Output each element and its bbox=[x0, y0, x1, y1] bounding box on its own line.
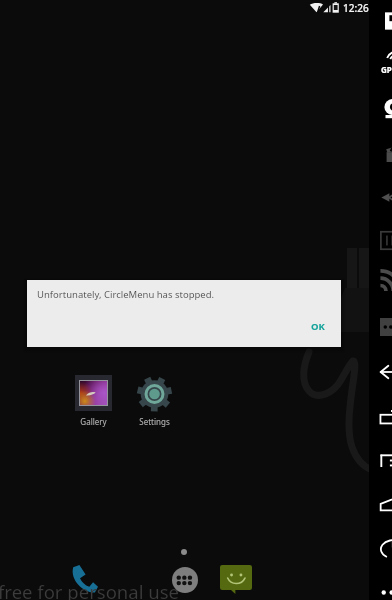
button[interactable]: Camera bbox=[380, 99, 392, 119]
button[interactable]: Video bbox=[383, 145, 392, 162]
button[interactable]: Window bbox=[380, 410, 392, 424]
button[interactable]: More options bbox=[380, 588, 392, 597]
staticText: OK bbox=[311, 320, 325, 333]
button[interactable]: Settings bbox=[130, 373, 179, 429]
staticText: 12:26 bbox=[343, 1, 369, 15]
button[interactable]: Phone bbox=[67, 565, 98, 593]
button[interactable]: ID bbox=[380, 231, 392, 250]
staticText: Settings bbox=[130, 416, 179, 427]
button[interactable]: Back bbox=[380, 364, 392, 381]
staticText: Gallery bbox=[69, 416, 118, 427]
button[interactable]: List bbox=[380, 454, 392, 467]
button[interactable]: Apps bbox=[172, 567, 198, 593]
button[interactable]: RSS bbox=[380, 273, 392, 291]
button[interactable]: Save bbox=[385, 12, 392, 30]
button[interactable]: Messaging bbox=[220, 565, 252, 594]
staticText: GPS bbox=[381, 64, 392, 75]
button[interactable]: GPS bbox=[381, 56, 392, 66]
button[interactable]: Shape bbox=[380, 499, 392, 511]
staticText: Unfortunately, CircleMenu has stopped. bbox=[37, 288, 215, 301]
button[interactable]: More bbox=[380, 318, 392, 336]
button[interactable]: Gallery bbox=[69, 373, 118, 429]
button[interactable]: Share bbox=[381, 188, 392, 207]
button[interactable]: Power bbox=[380, 539, 392, 559]
button[interactable]: OK bbox=[303, 317, 333, 336]
staticText: free for personal use bbox=[0, 579, 179, 600]
